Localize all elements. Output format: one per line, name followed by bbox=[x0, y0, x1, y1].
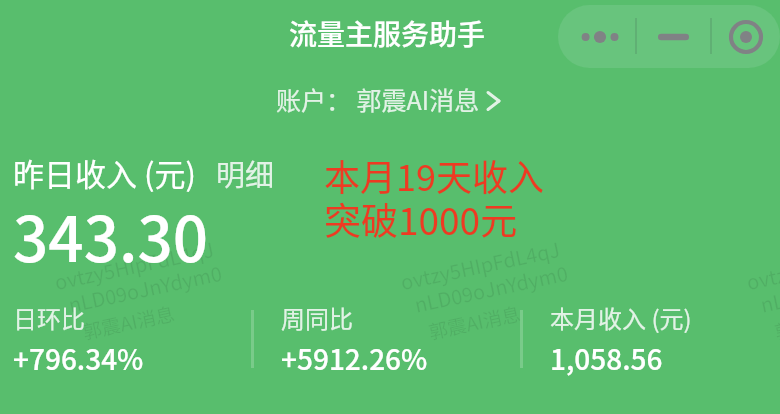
staticText: ovtzy5HIpFdL4qJ bbox=[52, 234, 216, 296]
button[interactable]: 周同比 bbox=[281, 300, 428, 376]
staticText: 郭震AI消息 bbox=[772, 298, 780, 345]
staticText: nLD09oJnYdym0 bbox=[758, 258, 780, 319]
staticText: 日环比 bbox=[13, 300, 85, 335]
staticText: 账户： 郭震AI消息 bbox=[276, 81, 480, 117]
staticText: 周同比 bbox=[281, 300, 353, 335]
staticText: 1,058.56 bbox=[550, 338, 663, 379]
staticText: 343.30 bbox=[13, 190, 209, 280]
staticText: nLD09oJnYdym0 bbox=[66, 258, 224, 319]
staticText: 昨日收入 (元) bbox=[13, 150, 196, 195]
button[interactable]: More options bbox=[570, 5, 630, 68]
button[interactable]: 日环比 bbox=[13, 300, 144, 376]
button[interactable]: 本月收入 (元) bbox=[550, 300, 692, 376]
staticText: 郭震AI消息 bbox=[426, 298, 524, 345]
button[interactable]: 明细 bbox=[216, 152, 275, 194]
staticText: 本月19天收入 bbox=[324, 149, 544, 201]
staticText: 流量主服务助手 bbox=[289, 13, 486, 54]
staticText: 本月收入 (元) bbox=[550, 300, 692, 335]
staticText: ovtzy5HIpFdL4qJ bbox=[398, 234, 562, 296]
staticText: +796.34% bbox=[13, 338, 144, 379]
staticText: 郭震AI消息 bbox=[80, 298, 178, 345]
staticText: 突破1000元 bbox=[324, 192, 518, 246]
button[interactable]: Close bbox=[712, 5, 780, 68]
staticText: +5912.26% bbox=[281, 338, 428, 379]
button[interactable]: Minimize bbox=[645, 5, 701, 68]
staticText: nLD09oJnYdym0 bbox=[412, 258, 570, 319]
button[interactable]: 账户： 郭震AI消息 bbox=[276, 81, 506, 117]
